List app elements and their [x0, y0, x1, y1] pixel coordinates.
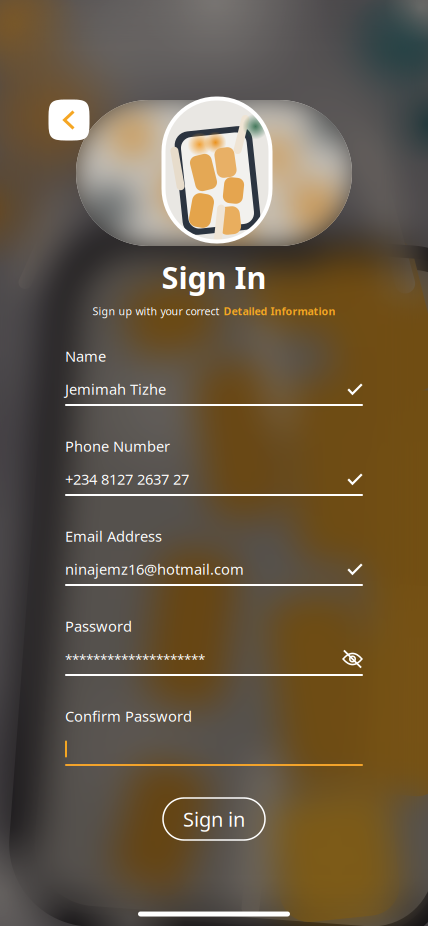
- staticText: Password: [65, 616, 132, 636]
- staticText: Jemimah Tizhe: [65, 379, 166, 399]
- staticText: Detailed Information: [223, 304, 335, 318]
- staticText: Name: [65, 346, 106, 366]
- staticText: ********************: [65, 650, 205, 668]
- staticText: Sign In: [161, 257, 266, 297]
- staticText: Email Address: [65, 526, 162, 546]
- staticText: +234 8127 2637 27: [65, 469, 189, 489]
- staticText: Sign in: [183, 806, 245, 832]
- button[interactable]: Back: [48, 99, 89, 140]
- button[interactable]: Sign in: [163, 798, 265, 840]
- staticText: ninajemz16@hotmail.com: [65, 559, 244, 579]
- staticText: Confirm Password: [65, 706, 192, 726]
- staticText: Sign up with your correct: [92, 304, 219, 318]
- staticText: Phone Number: [65, 436, 170, 456]
